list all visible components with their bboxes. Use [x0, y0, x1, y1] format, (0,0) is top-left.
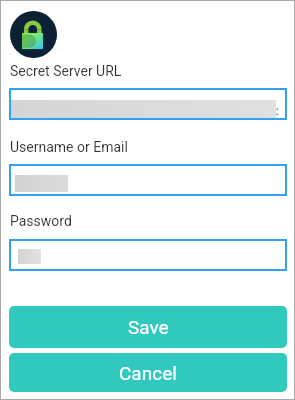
- staticText: Username or Email: [10, 139, 128, 155]
- staticText: Cancel: [119, 362, 177, 384]
- staticText: Password: [10, 213, 72, 229]
- button[interactable]: Cancel: [9, 353, 287, 392]
- button[interactable]: Save: [9, 306, 287, 348]
- other: App logo: [10, 11, 57, 58]
- staticText: Secret Server URL: [10, 63, 122, 79]
- button[interactable]: [9, 164, 287, 196]
- button[interactable]: [9, 88, 287, 120]
- staticText: Save: [128, 316, 169, 338]
- button[interactable]: [9, 239, 287, 271]
